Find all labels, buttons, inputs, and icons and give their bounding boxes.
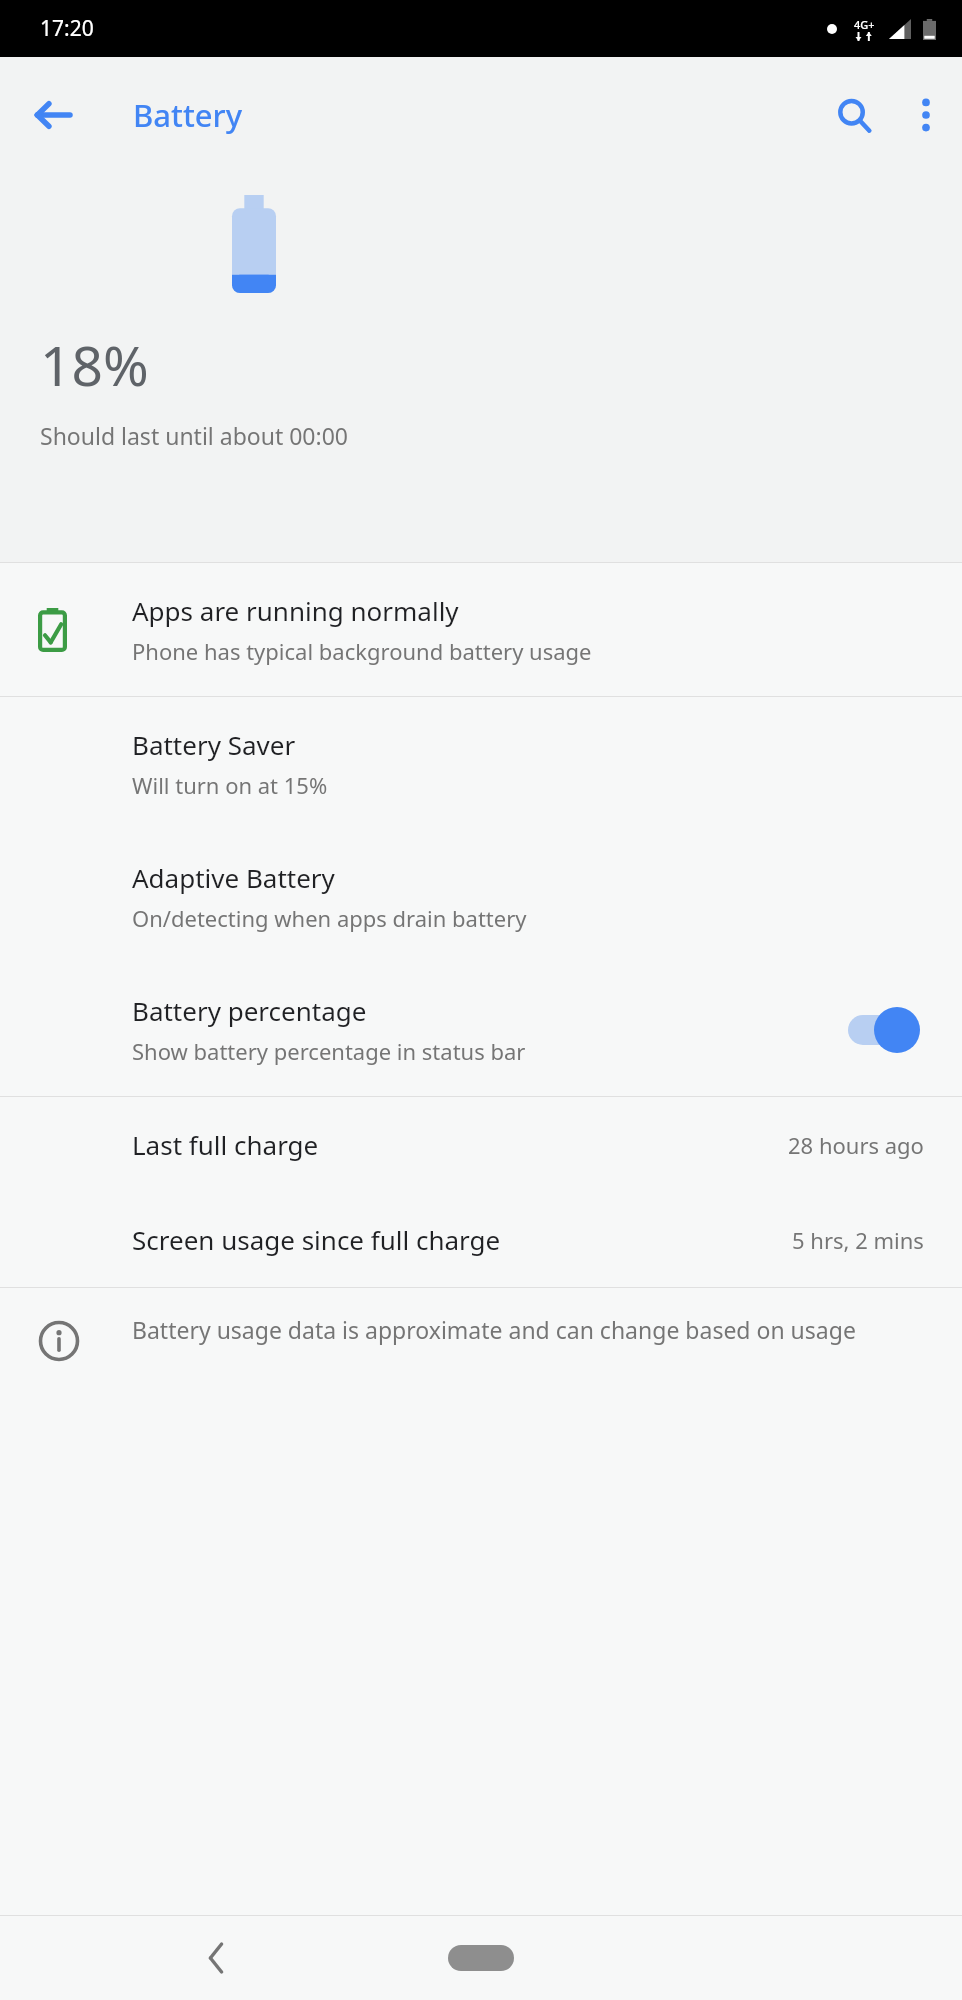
button[interactable]: Battery Saver bbox=[0, 697, 962, 830]
staticText: 4G+ bbox=[854, 17, 875, 32]
button[interactable]: Home bbox=[441, 1938, 521, 1978]
staticText: Phone has typical background battery usa… bbox=[132, 636, 592, 666]
staticText: 18% bbox=[40, 327, 149, 402]
staticText: Show battery percentage in status bar bbox=[132, 1036, 526, 1066]
staticText: Battery usage data is approximate and ca… bbox=[132, 1314, 856, 1345]
staticText: Battery percentage bbox=[132, 993, 367, 1028]
staticText: Adaptive Battery bbox=[132, 860, 335, 895]
staticText: Should last until about 00:00 bbox=[40, 420, 348, 451]
button[interactable]: Adaptive Battery bbox=[0, 830, 962, 963]
button[interactable]: More options bbox=[890, 79, 962, 151]
staticText: Battery Saver bbox=[132, 727, 296, 762]
button[interactable]: Back bbox=[18, 80, 88, 150]
button[interactable]: Last full charge bbox=[0, 1097, 962, 1192]
button[interactable]: Back bbox=[180, 1922, 252, 1994]
staticText: Battery bbox=[133, 94, 243, 136]
button[interactable]: Search bbox=[818, 79, 890, 151]
staticText: Screen usage since full charge bbox=[132, 1222, 792, 1257]
button[interactable]: Battery percentage bbox=[0, 963, 962, 1096]
button[interactable]: Apps are running normally bbox=[0, 563, 962, 696]
staticText: Will turn on at 15% bbox=[132, 770, 328, 800]
button[interactable]: Screen usage since full charge bbox=[0, 1192, 962, 1287]
staticText: On/detecting when apps drain battery bbox=[132, 903, 527, 933]
staticText: 28 hours ago bbox=[788, 1130, 924, 1160]
staticText: 17:20 bbox=[40, 14, 94, 43]
staticText: Apps are running normally bbox=[132, 593, 459, 628]
staticText: Last full charge bbox=[132, 1127, 788, 1162]
other: Battery percentage toggle bbox=[846, 1005, 924, 1055]
staticText: 5 hrs, 2 mins bbox=[792, 1225, 924, 1255]
